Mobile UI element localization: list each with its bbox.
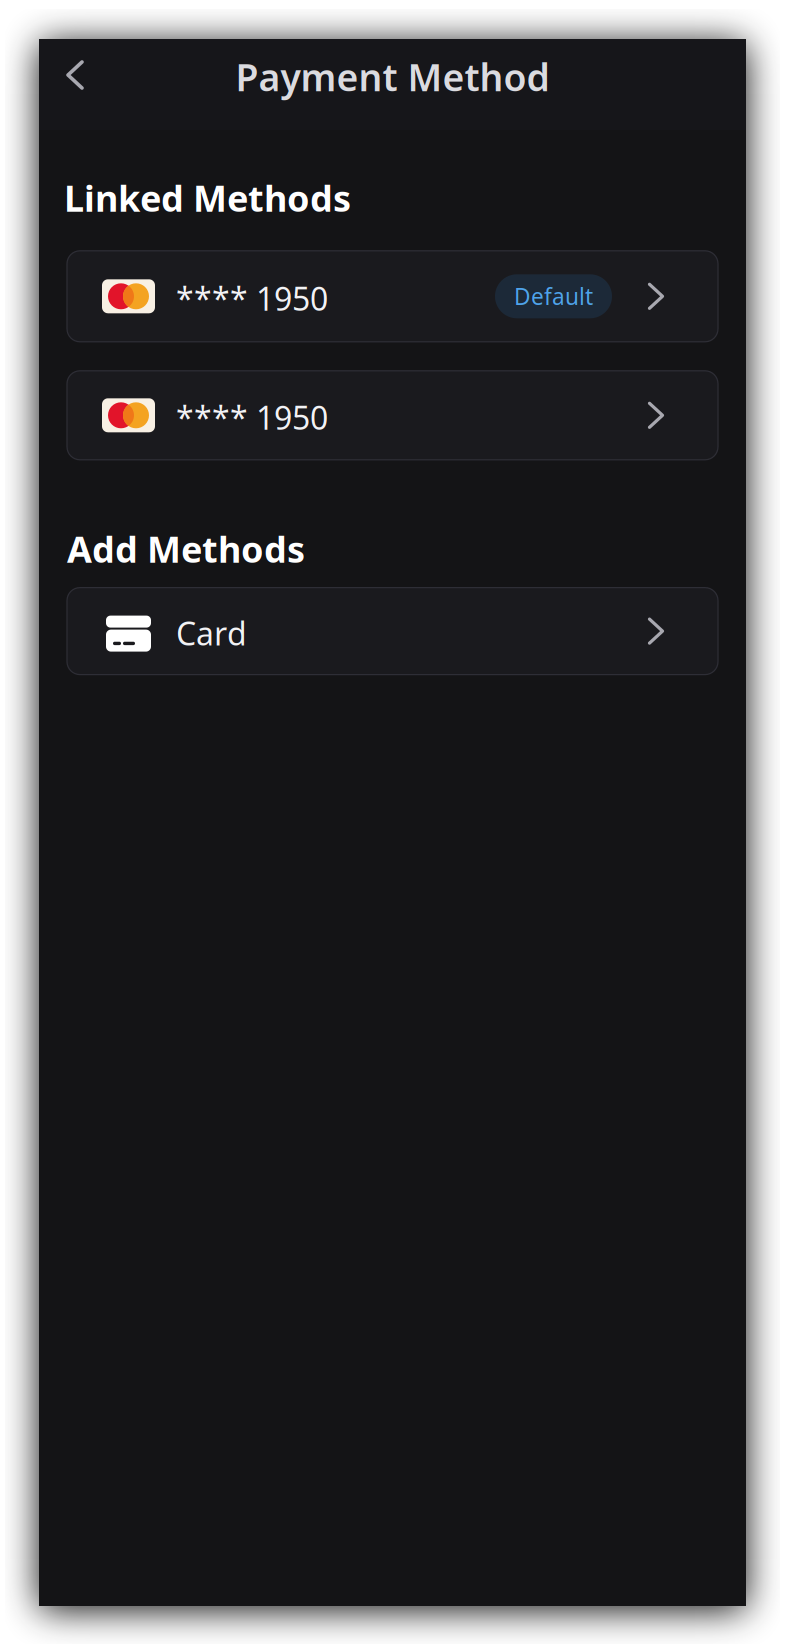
staticText: **** 1950	[176, 277, 328, 320]
staticText: Card	[176, 612, 247, 654]
button[interactable]: Back	[47, 47, 103, 103]
button[interactable]: **** 1950	[67, 371, 718, 460]
staticText: Payment Method	[235, 52, 549, 102]
staticText: Linked Methods	[64, 174, 351, 222]
staticText: Default	[514, 281, 593, 311]
staticText: Add Methods	[67, 525, 305, 573]
button[interactable]: Card	[67, 588, 718, 675]
staticText: **** 1950	[176, 396, 328, 439]
button[interactable]: **** 1950	[67, 251, 718, 342]
